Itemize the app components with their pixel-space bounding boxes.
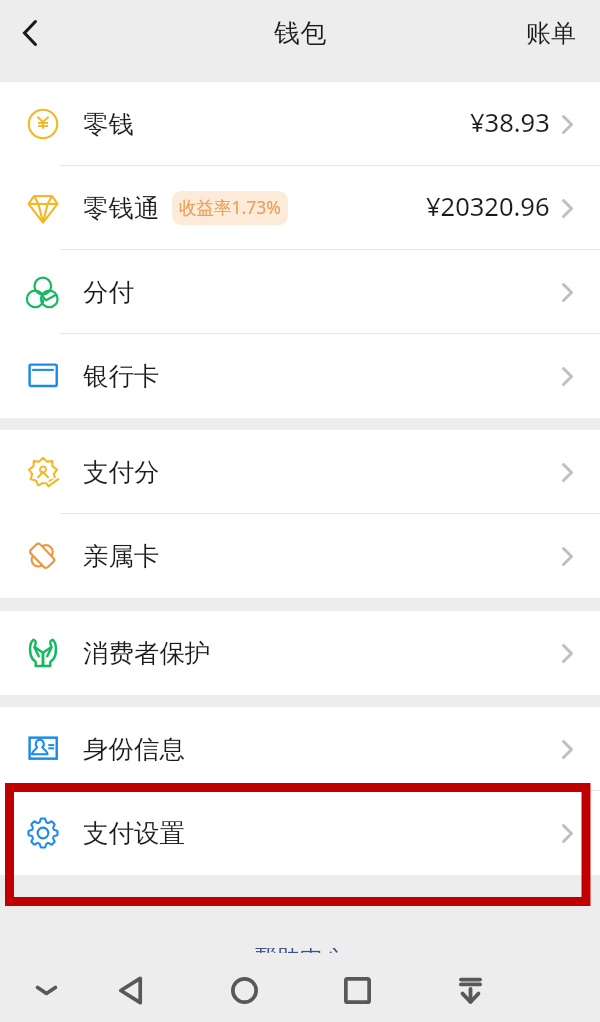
staticText: 身份信息 [83,733,185,765]
staticText: 银行卡 [83,360,160,392]
staticText: 支付设置 [83,817,185,849]
button[interactable]: 支付分 [0,430,600,514]
button[interactable]: 亲属卡 [0,514,600,598]
staticText: 支付分 [83,456,160,488]
button[interactable]: 身份信息 [0,707,600,791]
button[interactable]: 零钱通 [0,166,600,250]
staticText: 消费者保护 [83,637,211,669]
button[interactable]: 零钱 [0,82,600,166]
staticText: ¥20320.96 [426,189,550,224]
button[interactable]: Home [217,960,271,1022]
button[interactable]: 支付设置 [0,791,600,875]
staticText: 账单 [526,18,576,49]
button[interactable]: Back [103,960,157,1022]
staticText: 零钱 [83,108,134,140]
button[interactable]: Hide keyboard [19,960,73,1022]
button[interactable]: 银行卡 [0,334,600,418]
button[interactable]: Recents [330,960,384,1022]
button[interactable]: Back [0,0,60,82]
staticText: 收益率1.73% [179,195,281,219]
button[interactable]: 账单 [502,0,600,82]
staticText: 分付 [83,276,134,308]
button[interactable]: Collapse [443,960,497,1022]
staticText: 零钱通 [83,192,160,224]
button[interactable]: 帮助中心 [254,948,346,958]
staticText: 帮助中心 [254,948,346,953]
button[interactable]: 消费者保护 [0,611,600,695]
staticText: ¥38.93 [470,105,550,140]
button[interactable]: 分付 [0,250,600,334]
staticText: 钱包 [274,17,326,50]
staticText: 亲属卡 [83,540,160,572]
